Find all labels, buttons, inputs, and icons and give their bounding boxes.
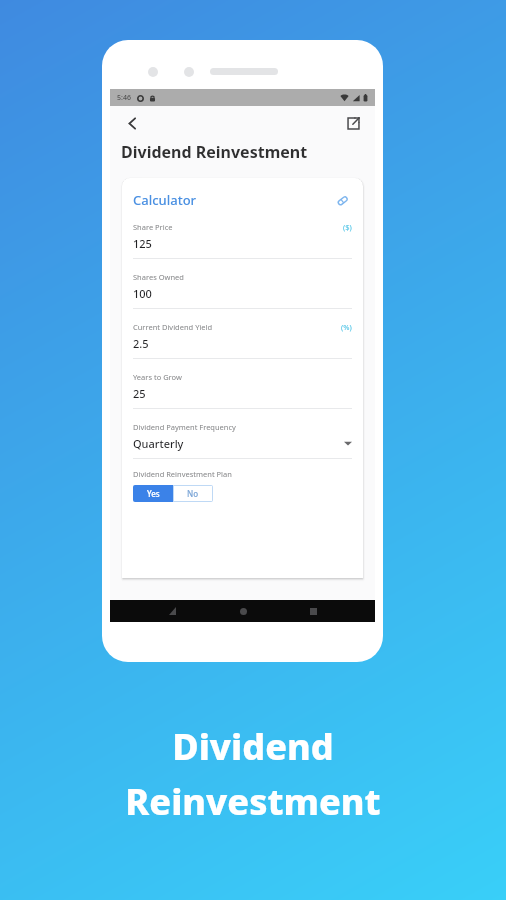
staticText: 25: [133, 386, 146, 401]
staticText: Years to Grow: [133, 372, 182, 382]
staticText: ($): [343, 222, 352, 232]
button[interactable]: Share Price: [133, 222, 352, 272]
staticText: Dividend Payment Frequency: [133, 422, 236, 432]
staticText: Dividend Reinvestment Plan: [133, 469, 232, 479]
button[interactable]: Home: [234, 602, 252, 620]
staticText: Dividend: [172, 722, 334, 771]
button[interactable]: Clear: [332, 190, 352, 210]
staticText: Share Price: [133, 222, 173, 232]
button[interactable]: Yes: [133, 485, 173, 502]
button[interactable]: Open in new: [340, 110, 366, 136]
staticText: Calculator: [133, 191, 197, 209]
button[interactable]: Back: [119, 110, 145, 136]
staticText: Dividend Reinvestment: [121, 141, 308, 163]
staticText: 5:46: [117, 93, 131, 103]
staticText: (%): [341, 322, 352, 332]
button[interactable]: Back: [163, 602, 181, 620]
staticText: Yes: [147, 488, 160, 499]
staticText: Shares Owned: [133, 272, 184, 282]
staticText: 125: [133, 236, 152, 251]
staticText: 2.5: [133, 336, 149, 351]
button[interactable]: Dividend Payment Frequency: [133, 422, 352, 459]
button[interactable]: Recents: [304, 602, 322, 620]
staticText: No: [187, 488, 199, 499]
staticText: Reinvestment: [125, 777, 381, 826]
staticText: 100: [133, 286, 152, 301]
staticText: Current Dividend Yield: [133, 322, 213, 332]
button[interactable]: Years to Grow: [133, 372, 352, 422]
button[interactable]: Shares Owned: [133, 272, 352, 322]
button[interactable]: Current Dividend Yield: [133, 322, 352, 372]
button[interactable]: No: [173, 485, 213, 502]
staticText: Quarterly: [133, 436, 184, 451]
